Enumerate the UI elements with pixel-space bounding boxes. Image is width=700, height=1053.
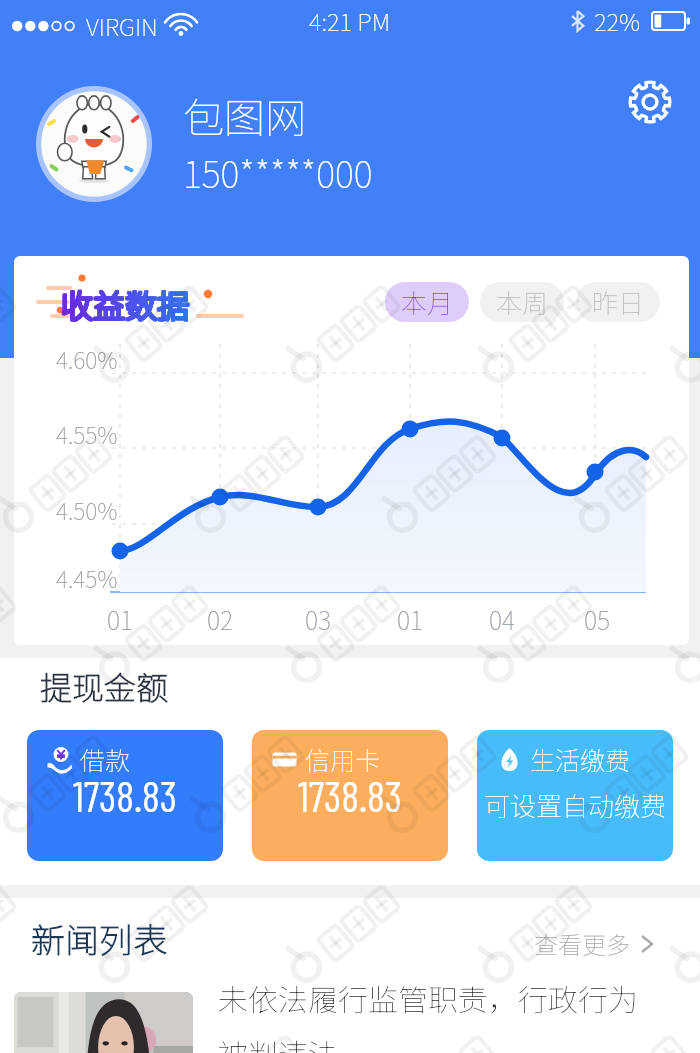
- staticText: 借款: [80, 741, 131, 777]
- staticText: 查看更多: [534, 926, 630, 961]
- staticText: 可设置自动缴费: [484, 786, 667, 824]
- staticText: 本月: [401, 283, 454, 321]
- button[interactable]: 生活缴费: [477, 730, 673, 861]
- staticText: 收益数据: [62, 281, 191, 327]
- button[interactable]: 本周: [480, 282, 564, 322]
- staticText: 4:21 PM: [309, 3, 391, 38]
- staticText: 4.60%: [56, 342, 118, 374]
- button[interactable]: 本月: [385, 282, 469, 322]
- staticText: 05: [584, 601, 611, 633]
- staticText: 02: [207, 601, 234, 633]
- staticText: 收益数据: [60, 281, 189, 327]
- staticText: 4.45%: [56, 561, 118, 593]
- staticText: 未依法履行监管职责，行政行为: [218, 976, 638, 1019]
- staticText: 本周: [496, 283, 549, 321]
- staticText: 收益数据: [60, 282, 189, 328]
- staticText: 信用卡: [305, 741, 381, 777]
- staticText: 新闻列表: [31, 914, 167, 963]
- button[interactable]: 未依法履行监管职责，行政行为: [14, 976, 700, 1053]
- button[interactable]: 借款: [27, 730, 223, 861]
- staticText: 03: [305, 601, 332, 633]
- button[interactable]: 昨日: [576, 282, 660, 322]
- staticText: 收益数据: [62, 280, 191, 326]
- staticText: 提现金额: [40, 663, 169, 709]
- staticText: 收益数据: [62, 282, 191, 328]
- staticText: 收益数据: [61, 282, 190, 328]
- staticText: 生活缴费: [530, 741, 631, 777]
- button[interactable]: 信用卡: [252, 730, 448, 861]
- staticText: 收益数据: [62, 281, 191, 327]
- staticText: 04: [489, 601, 516, 633]
- staticText: 收益数据: [62, 280, 191, 326]
- staticText: 4.50%: [56, 493, 118, 525]
- staticText: 01: [107, 601, 134, 633]
- button[interactable]: Settings: [626, 78, 674, 126]
- staticText: 4.55%: [56, 417, 118, 449]
- staticText: 1738.83: [298, 770, 402, 820]
- staticText: 收益数据: [61, 280, 190, 326]
- staticText: 包图网: [183, 85, 306, 144]
- staticText: 昨日: [592, 283, 645, 321]
- staticText: 被判违法: [218, 1031, 338, 1053]
- staticText: 22%: [594, 3, 641, 38]
- staticText: 收益数据: [60, 280, 189, 326]
- staticText: 1738.83: [73, 770, 177, 820]
- staticText: 01: [397, 601, 424, 633]
- staticText: 150*****000: [183, 146, 373, 198]
- staticText: VIRGIN: [86, 8, 158, 43]
- staticText: 收益数据: [62, 282, 191, 328]
- staticText: 收益数据: [61, 281, 190, 327]
- button[interactable]: 查看更多: [534, 926, 654, 961]
